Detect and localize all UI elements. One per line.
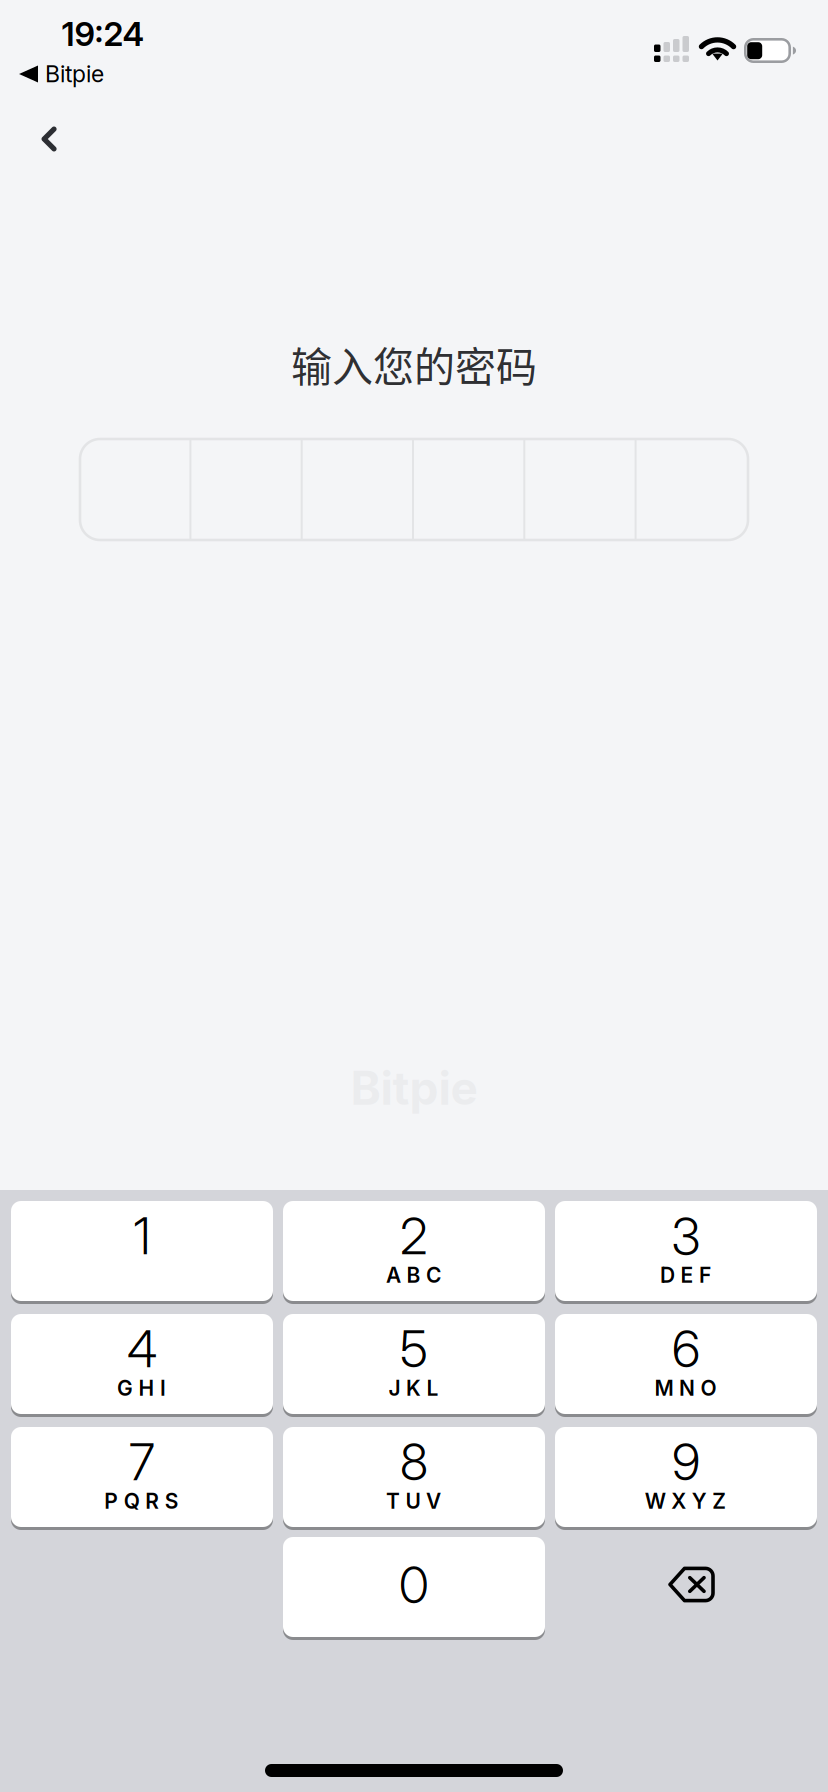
button[interactable]: 0 (283, 1537, 545, 1640)
button[interactable]: 6 (555, 1314, 817, 1417)
button[interactable]: Bitpie (19, 56, 199, 92)
staticText: GHI (117, 1375, 166, 1401)
staticText: TUV (386, 1488, 441, 1514)
staticText: ABC (386, 1262, 441, 1288)
staticText: 6 (672, 1319, 700, 1379)
staticText: JKL (388, 1375, 438, 1401)
staticText: WXYZ (645, 1488, 726, 1514)
staticText: 3 (671, 1206, 700, 1266)
staticText: 1 (133, 1206, 150, 1266)
staticText: PQRS (104, 1488, 179, 1514)
staticText: 8 (400, 1432, 428, 1492)
button[interactable]: 3 (555, 1201, 817, 1304)
staticText: Bitpie (350, 1060, 477, 1116)
staticText: 4 (127, 1319, 157, 1379)
staticText: 5 (400, 1319, 428, 1379)
staticText: 0 (399, 1555, 429, 1615)
button[interactable]: Delete (555, 1537, 817, 1640)
button[interactable]: 4 (11, 1314, 273, 1417)
staticText: Bitpie (45, 60, 104, 88)
staticText: 19:24 (61, 14, 144, 54)
button[interactable]: 5 (283, 1314, 545, 1417)
button[interactable]: Back (5, 95, 93, 183)
button[interactable]: 2 (283, 1201, 545, 1304)
button[interactable]: 9 (555, 1427, 817, 1530)
staticText: 输入您的密码 (291, 334, 537, 394)
button[interactable]: 1 (11, 1201, 273, 1304)
staticText: 7 (129, 1432, 155, 1492)
staticText: 9 (672, 1432, 700, 1492)
staticText: 2 (400, 1206, 428, 1266)
staticText: DEF (660, 1262, 711, 1288)
staticText: MNO (654, 1375, 716, 1401)
button[interactable]: 7 (11, 1427, 273, 1530)
button[interactable]: 8 (283, 1427, 545, 1530)
